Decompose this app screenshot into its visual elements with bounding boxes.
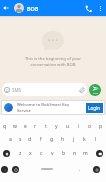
- button[interactable]: Send: [89, 84, 101, 96]
- staticText: j: [73, 136, 75, 143]
- button[interactable]: f: [35, 133, 46, 146]
- staticText: o: [88, 123, 92, 130]
- button[interactable]: h: [57, 133, 68, 146]
- staticText: k: [83, 136, 86, 143]
- button[interactable]: v: [47, 146, 58, 160]
- staticText: r: [34, 123, 37, 130]
- staticText: .: [79, 166, 81, 173]
- staticText: y: [55, 123, 58, 130]
- button[interactable]: More options: [95, 0, 106, 16]
- button[interactable]: s: [15, 133, 25, 146]
- button[interactable]: SMS: [2, 83, 87, 96]
- staticText: l: [95, 136, 97, 143]
- button[interactable]: z: [15, 146, 25, 160]
- staticText: e: [24, 123, 27, 130]
- button[interactable]: g: [46, 133, 57, 146]
- button[interactable]: m: [80, 146, 91, 160]
- button[interactable]: u: [62, 119, 73, 133]
- button[interactable]: Shift: [0, 146, 13, 160]
- staticText: g: [50, 136, 54, 143]
- staticText: n: [73, 150, 77, 157]
- button[interactable]: c: [36, 146, 47, 160]
- button[interactable]: w: [10, 119, 20, 133]
- staticText: b: [62, 150, 66, 157]
- button[interactable]: r: [30, 119, 40, 133]
- staticText: p: [99, 123, 103, 130]
- button[interactable]: e: [20, 119, 30, 133]
- staticText: u: [66, 123, 70, 130]
- button[interactable]: a: [5, 133, 15, 146]
- button[interactable]: o: [84, 119, 95, 133]
- button[interactable]: Symbols: [0, 160, 9, 178]
- staticText: SMS: [12, 87, 22, 93]
- button[interactable]: b: [58, 146, 69, 160]
- staticText: z: [19, 150, 22, 157]
- staticText: a: [9, 136, 12, 143]
- button[interactable]: .: [73, 160, 87, 178]
- staticText: q: [3, 123, 7, 130]
- button[interactable]: l: [90, 133, 101, 146]
- staticText: s: [19, 136, 22, 143]
- button[interactable]: Attach: [77, 83, 87, 96]
- button[interactable]: Space: [21, 160, 73, 178]
- staticText: Login: [88, 105, 101, 111]
- staticText: i: [78, 123, 80, 130]
- button[interactable]: i: [73, 119, 84, 133]
- button[interactable]: Enter: [87, 160, 106, 178]
- staticText: SMS: [93, 91, 98, 94]
- staticText: t: [45, 123, 47, 130]
- button[interactable]: x: [25, 146, 36, 160]
- staticText: h: [61, 136, 65, 143]
- staticText: w: [13, 123, 17, 130]
- staticText: m: [83, 150, 88, 157]
- button[interactable]: y: [51, 119, 62, 133]
- button[interactable]: t: [40, 119, 51, 133]
- button[interactable]: j: [68, 133, 79, 146]
- button[interactable]: q: [0, 119, 10, 133]
- button[interactable]: Call: [81, 0, 95, 16]
- button[interactable]: n: [69, 146, 80, 160]
- button[interactable]: Back: [0, 0, 11, 16]
- staticText: BOB: [27, 5, 39, 12]
- button[interactable]: Login: [86, 103, 103, 113]
- button[interactable]: k: [79, 133, 90, 146]
- button[interactable]: d: [25, 133, 35, 146]
- staticText: v: [51, 150, 54, 157]
- staticText: c: [40, 150, 43, 157]
- staticText: x: [29, 150, 32, 157]
- staticText: f: [40, 136, 42, 143]
- button[interactable]: p: [95, 119, 106, 133]
- staticText: d: [28, 136, 32, 143]
- button[interactable]: Backspace: [93, 146, 106, 160]
- staticText: This is the beginning of your conversati…: [25, 56, 81, 68]
- staticText: Welcome to BobSmart Key Service: [17, 102, 85, 113]
- button[interactable]: Emoji: [9, 160, 21, 178]
